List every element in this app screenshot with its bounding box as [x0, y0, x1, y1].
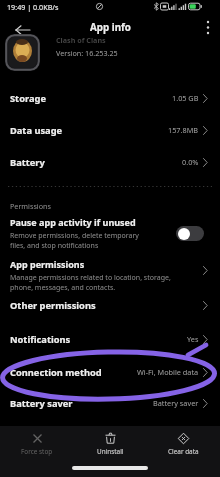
staticText: Pause app activity if unused — [10, 216, 136, 228]
button[interactable]: Clear data — [149, 428, 217, 462]
staticText: Clash of Clans — [56, 35, 106, 45]
staticText: Version: 16.253.25 — [56, 48, 118, 58]
staticText: Yes — [187, 334, 199, 344]
staticText: Battery — [10, 156, 45, 169]
button[interactable]: Battery — [0, 149, 220, 175]
staticText: phone, messages, and contacts. — [10, 283, 116, 293]
staticText: Other permissions — [10, 299, 96, 312]
button[interactable]: Connection method — [0, 359, 220, 385]
staticText: App permissions — [10, 258, 85, 270]
staticText: Remove permissions, delete temporary — [10, 231, 139, 241]
button[interactable]: Notifications — [0, 326, 220, 352]
button[interactable] — [198, 16, 220, 39]
button[interactable]: Storage — [0, 85, 220, 111]
button[interactable]: Uninstall — [76, 428, 144, 462]
staticText: Data usage — [10, 124, 63, 137]
staticText: Wi-Fi, Mobile data — [137, 367, 199, 377]
staticText: 0.0% — [182, 157, 199, 167]
button[interactable]: Pause app activity if unused — [0, 212, 220, 254]
button[interactable]: Force stop — [3, 428, 71, 462]
staticText: files, and stop notifications — [10, 241, 99, 251]
staticText: Manage permissions related to location, … — [10, 273, 171, 283]
staticText: 19:49 | 0.0KB/s — [7, 2, 59, 12]
staticText: Force stop — [21, 447, 53, 456]
staticText: 1.05 GB — [172, 93, 199, 103]
staticText: Clear data — [168, 447, 199, 456]
button[interactable]: Other permissions — [0, 292, 220, 318]
staticText: Connection method — [10, 366, 102, 379]
staticText: App info — [90, 21, 131, 34]
staticText: 157.8MB — [168, 125, 199, 135]
staticText: Battery saver — [10, 397, 73, 410]
button[interactable] — [176, 226, 204, 241]
staticText: Permissions — [10, 201, 51, 211]
staticText: Storage — [10, 92, 46, 105]
button[interactable]: Battery saver — [0, 390, 220, 416]
staticText: Battery saver — [153, 398, 199, 408]
button[interactable] — [8, 19, 32, 37]
button[interactable]: Data usage — [0, 117, 220, 143]
button[interactable]: App permissions — [0, 254, 220, 296]
staticText: Notifications — [10, 333, 71, 346]
staticText: Uninstall — [97, 447, 124, 456]
